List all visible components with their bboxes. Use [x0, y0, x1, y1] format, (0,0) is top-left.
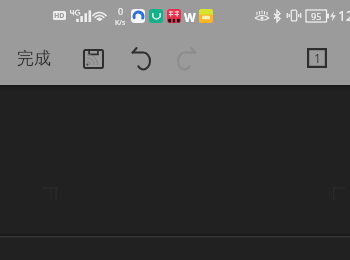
staticText: 0 — [118, 5, 124, 17]
staticText: K/s — [115, 18, 126, 28]
button[interactable]: Save — [74, 40, 110, 76]
button[interactable]: 完成 — [6, 40, 62, 76]
button[interactable]: Pages — [299, 40, 335, 76]
staticText: 95 — [311, 10, 322, 22]
staticText: W — [184, 9, 196, 22]
staticText: 完成 — [17, 48, 51, 69]
button[interactable]: Redo — [169, 40, 205, 76]
staticText: 1 — [314, 50, 321, 66]
staticText: 12 — [338, 6, 350, 25]
button[interactable]: Undo — [123, 40, 159, 76]
staticText: HD — [54, 11, 65, 20]
